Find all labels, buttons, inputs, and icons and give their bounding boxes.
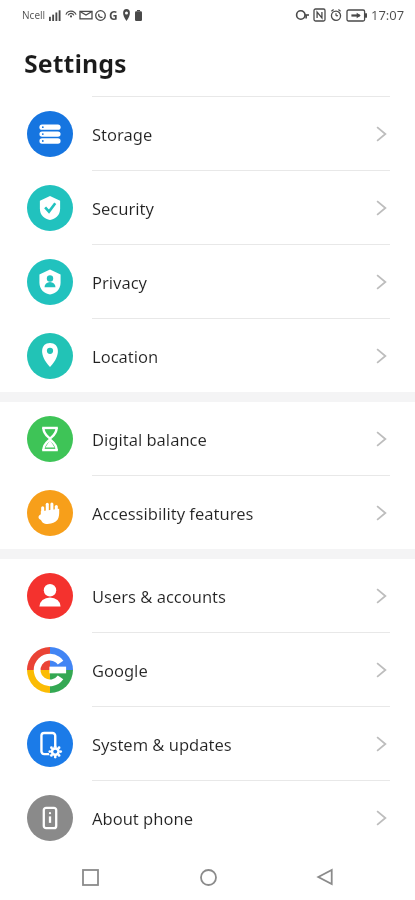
button[interactable]: Digital balance: [0, 402, 415, 476]
button[interactable]: Recent apps: [62, 854, 118, 900]
staticText: Location: [92, 345, 159, 367]
button[interactable]: Back: [297, 854, 353, 900]
staticText: Security: [92, 197, 154, 219]
staticText: Digital balance: [92, 428, 207, 450]
button[interactable]: Privacy: [0, 245, 415, 319]
staticText: System & updates: [92, 733, 232, 755]
button[interactable]: Location: [0, 319, 415, 392]
staticText: Ncell: [22, 8, 46, 22]
staticText: Users & accounts: [92, 585, 226, 607]
button[interactable]: System & updates: [0, 707, 415, 781]
staticText: G: [109, 7, 118, 23]
button[interactable]: Accessibility features: [0, 476, 415, 549]
button[interactable]: Google: [0, 633, 415, 707]
button[interactable]: About phone: [0, 781, 415, 854]
staticText: About phone: [92, 807, 193, 829]
button[interactable]: Security: [0, 171, 415, 245]
staticText: Privacy: [92, 271, 148, 293]
staticText: Storage: [92, 123, 153, 145]
staticText: Settings: [24, 46, 127, 80]
staticText: Accessibility features: [92, 502, 254, 524]
staticText: 17:07: [371, 6, 405, 24]
staticText: Google: [92, 659, 148, 681]
button[interactable]: Users & accounts: [0, 559, 415, 633]
button[interactable]: Storage: [0, 96, 415, 171]
button[interactable]: Home: [180, 854, 236, 900]
